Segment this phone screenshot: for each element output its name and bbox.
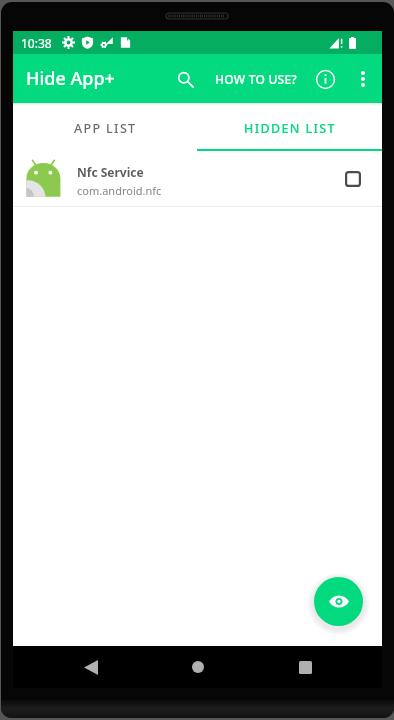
staticText: com.android.nfc: [77, 183, 162, 198]
button[interactable]: Show hidden apps: [314, 577, 363, 626]
staticText: HOW TO USE?: [215, 71, 297, 87]
staticText: 10:38: [21, 35, 52, 51]
button[interactable]: Select Nfc Service: [333, 159, 373, 199]
staticText: APP LIST: [74, 120, 137, 137]
button[interactable]: Info: [307, 61, 343, 97]
button[interactable]: Search: [165, 59, 205, 99]
staticText: Hide App+: [26, 66, 115, 91]
button[interactable]: Home: [176, 646, 220, 688]
button[interactable]: HIDDEN LIST: [197, 106, 382, 149]
button[interactable]: Recent apps: [283, 646, 327, 688]
staticText: HIDDEN LIST: [244, 120, 336, 137]
button[interactable]: APP LIST: [13, 106, 197, 149]
button[interactable]: More options: [343, 61, 382, 97]
button[interactable]: Nfc Service: [13, 151, 382, 206]
staticText: Nfc Service: [77, 164, 144, 180]
button[interactable]: HOW TO USE?: [205, 63, 307, 95]
button[interactable]: Back: [69, 646, 113, 688]
